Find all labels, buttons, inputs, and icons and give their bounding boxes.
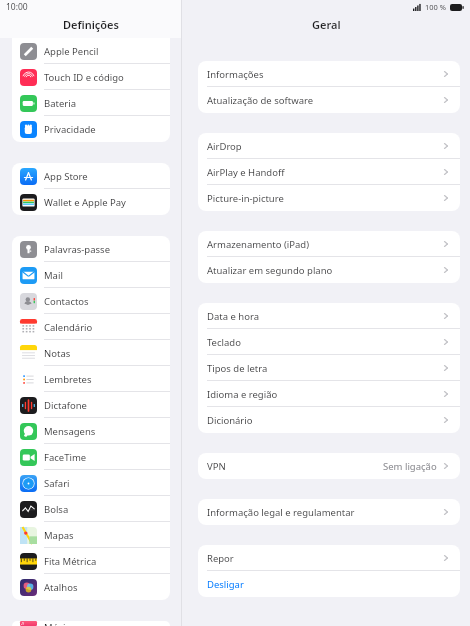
staticText: Sem ligação <box>383 460 437 473</box>
staticText: Bateria <box>44 97 76 110</box>
staticText: Tipos de letra <box>207 362 268 375</box>
button[interactable]: Armazenamento (iPad) <box>198 231 460 257</box>
button[interactable]: Contactos <box>12 288 170 314</box>
staticText: Calendário <box>44 321 93 334</box>
button[interactable]: FaceTime <box>12 444 170 470</box>
staticText: Armazenamento (iPad) <box>207 238 310 251</box>
button[interactable]: AirPlay e Handoff <box>198 159 460 185</box>
button[interactable]: Notas <box>12 340 170 366</box>
button[interactable]: Bolsa <box>12 496 170 522</box>
staticText: Apple Pencil <box>44 45 99 58</box>
staticText: Notas <box>44 347 71 360</box>
staticText: Picture-in-picture <box>207 192 284 205</box>
staticText: Dicionário <box>207 414 253 427</box>
staticText: Informações <box>207 68 264 81</box>
staticText: Música <box>44 621 76 626</box>
button[interactable]: Tipos de letra <box>198 355 460 381</box>
staticText: Mensagens <box>44 425 96 438</box>
button[interactable]: Dicionário <box>198 407 460 433</box>
staticText: Fita Métrica <box>44 555 97 568</box>
button[interactable]: Música <box>12 621 170 626</box>
staticText: Safari <box>44 477 70 490</box>
button[interactable]: Idioma e região <box>198 381 460 407</box>
button[interactable]: Desligar <box>198 571 460 597</box>
button[interactable]: Informações <box>198 61 460 87</box>
staticText: Geral <box>312 17 341 32</box>
button[interactable]: App Store <box>12 163 170 189</box>
staticText: Dictafone <box>44 399 87 412</box>
staticText: App Store <box>44 170 88 183</box>
staticText: Desligar <box>207 578 244 591</box>
button[interactable]: Wallet e Apple Pay <box>12 189 170 215</box>
staticText: Touch ID e código <box>44 71 124 84</box>
staticText: Privacidade <box>44 123 96 136</box>
button[interactable]: Picture-in-picture <box>198 185 460 211</box>
button[interactable]: Informação legal e regulamentar <box>198 499 460 525</box>
staticText: Contactos <box>44 295 89 308</box>
staticText: Lembretes <box>44 373 92 386</box>
button[interactable]: Data e hora <box>198 303 460 329</box>
staticText: FaceTime <box>44 451 87 464</box>
button[interactable]: Touch ID e código <box>12 64 170 90</box>
staticText: Wallet e Apple Pay <box>44 196 126 209</box>
staticText: Mapas <box>44 529 74 542</box>
button[interactable]: Bateria <box>12 90 170 116</box>
button[interactable]: Repor <box>198 545 460 571</box>
staticText: Idioma e região <box>207 388 278 401</box>
button[interactable]: Fita Métrica <box>12 548 170 574</box>
staticText: Repor <box>207 552 234 565</box>
button[interactable]: Privacidade <box>12 116 170 142</box>
button[interactable]: Teclado <box>198 329 460 355</box>
button[interactable]: Safari <box>12 470 170 496</box>
staticText: 10:00 <box>6 1 28 13</box>
button[interactable]: Atualizar em segundo plano <box>198 257 460 283</box>
button[interactable]: Palavras-passe <box>12 236 170 262</box>
staticText: Atualização de software <box>207 94 314 107</box>
staticText: Data e hora <box>207 310 260 323</box>
button[interactable]: AirDrop <box>198 133 460 159</box>
button[interactable]: Lembretes <box>12 366 170 392</box>
button[interactable]: Atalhos <box>12 574 170 600</box>
staticText: Teclado <box>207 336 241 349</box>
staticText: Atalhos <box>44 581 78 594</box>
staticText: Definições <box>63 17 119 32</box>
staticText: 100 % <box>425 2 447 12</box>
staticText: AirDrop <box>207 140 242 153</box>
button[interactable]: Apple Pencil <box>12 38 170 64</box>
staticText: Palavras-passe <box>44 243 110 256</box>
staticText: Mail <box>44 269 63 282</box>
button[interactable]: Mail <box>12 262 170 288</box>
button[interactable]: Atualização de software <box>198 87 460 113</box>
staticText: Bolsa <box>44 503 69 516</box>
staticText: Informação legal e regulamentar <box>207 506 355 519</box>
button[interactable]: Dictafone <box>12 392 170 418</box>
button[interactable]: Mensagens <box>12 418 170 444</box>
button[interactable]: Calendário <box>12 314 170 340</box>
staticText: AirPlay e Handoff <box>207 166 285 179</box>
button[interactable]: VPN <box>198 453 460 479</box>
staticText: Atualizar em segundo plano <box>207 264 333 277</box>
staticText: VPN <box>207 460 226 473</box>
button[interactable]: Mapas <box>12 522 170 548</box>
